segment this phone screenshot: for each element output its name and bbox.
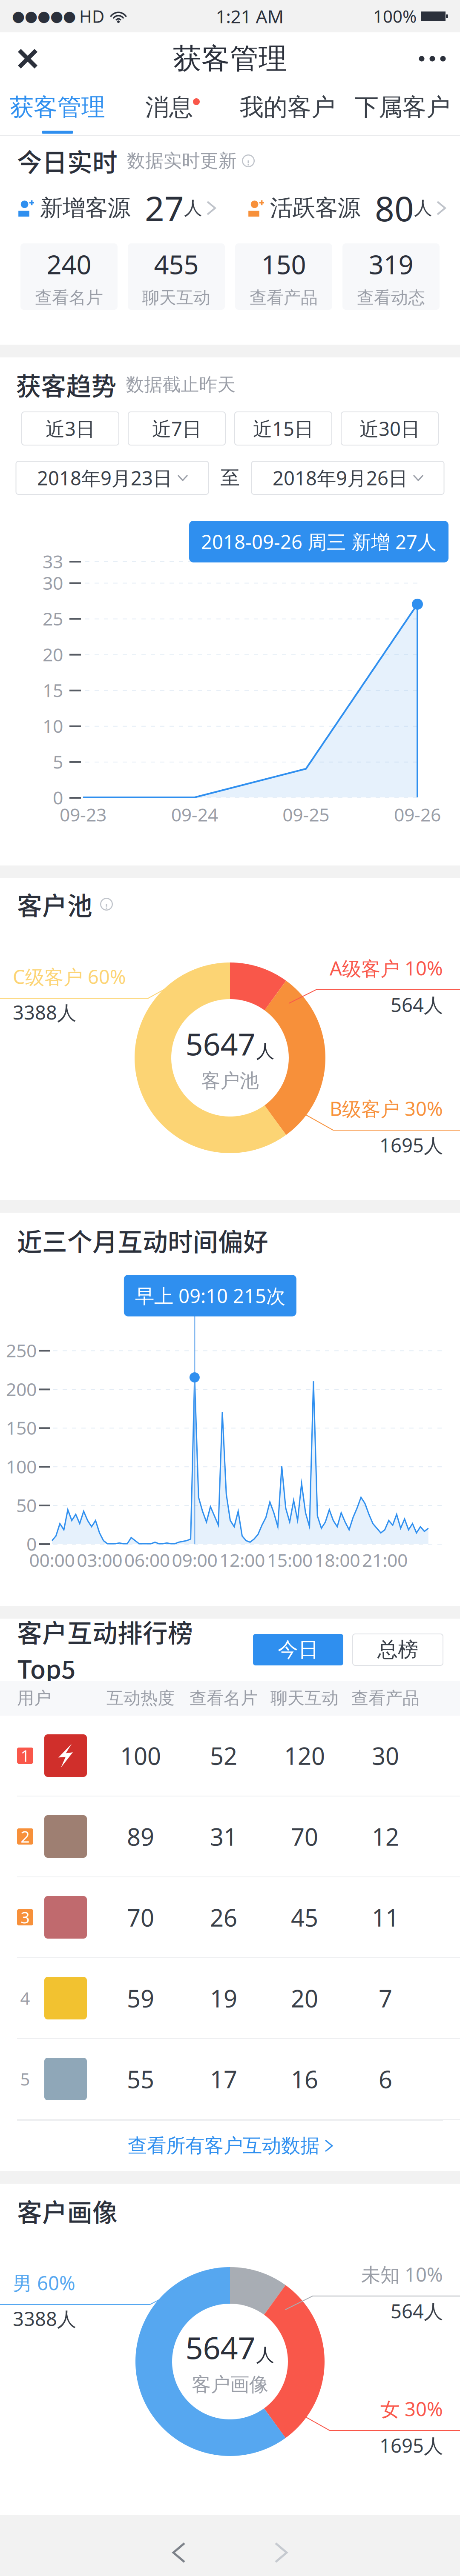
staticText: 今日实时 bbox=[17, 143, 118, 179]
staticText: 查看动态 bbox=[357, 287, 425, 308]
staticText: 564人 bbox=[391, 991, 443, 1018]
staticText: 240 bbox=[47, 246, 91, 282]
staticText: 下属客户 bbox=[355, 92, 450, 122]
staticText: 20 bbox=[43, 642, 63, 667]
staticText: 59 bbox=[127, 1982, 154, 2014]
staticText: A级客户 10% bbox=[330, 955, 443, 981]
button[interactable]: 今日 bbox=[253, 1634, 343, 1665]
staticText: 11 bbox=[372, 1901, 399, 1934]
staticText: 聊天互动 bbox=[270, 1687, 339, 1709]
staticText: 女 30% bbox=[380, 2396, 443, 2422]
staticText: 查看所有客户互动数据 bbox=[128, 2134, 319, 2158]
staticText: 30 bbox=[372, 1739, 399, 1772]
staticText: 获客管理 bbox=[10, 92, 105, 122]
staticText: 31 bbox=[210, 1820, 237, 1853]
staticText: 50 bbox=[16, 1493, 37, 1517]
button[interactable]: Close bbox=[0, 32, 55, 85]
staticText: 15:00 bbox=[267, 1548, 312, 1572]
staticText: 70 bbox=[291, 1820, 318, 1853]
staticText: 30 bbox=[43, 570, 63, 595]
staticText: 09-26 bbox=[394, 802, 441, 827]
staticText: 27 bbox=[145, 185, 184, 231]
staticText: 2018-09-26 周三 新增 27人 bbox=[201, 528, 437, 555]
button[interactable]: 近3日 bbox=[22, 412, 119, 445]
button[interactable]: 2018年9月23日 bbox=[16, 461, 208, 494]
button[interactable]: 240 bbox=[20, 243, 118, 310]
button[interactable]: 2018年9月26日 bbox=[252, 461, 444, 494]
button[interactable]: 下属客户 bbox=[345, 85, 460, 135]
staticText: 客户画像 bbox=[192, 2372, 268, 2397]
staticText: 100 bbox=[6, 1454, 37, 1479]
button[interactable]: More options bbox=[405, 32, 460, 85]
staticText: 03:00 bbox=[77, 1548, 122, 1572]
button[interactable]: 我的客户 bbox=[230, 85, 345, 135]
button[interactable]: 455 bbox=[128, 243, 225, 310]
staticText: 未知 10% bbox=[361, 2261, 443, 2287]
staticText: 20 bbox=[291, 1982, 318, 2014]
button[interactable]: 消息 bbox=[115, 85, 230, 135]
button[interactable]: 近15日 bbox=[235, 412, 332, 445]
button[interactable]: 查看所有客户互动数据 bbox=[0, 2121, 460, 2171]
staticText: 3 bbox=[21, 1907, 30, 1928]
button[interactable]: 150 bbox=[235, 243, 332, 310]
staticText: 120 bbox=[284, 1739, 325, 1772]
staticText: 近15日 bbox=[253, 415, 313, 442]
staticText: 人 bbox=[256, 2344, 275, 2366]
staticText: 7 bbox=[379, 1982, 392, 2014]
button[interactable]: 活跃客源 bbox=[230, 186, 460, 231]
staticText: 19 bbox=[210, 1982, 237, 2014]
staticText: 250 bbox=[6, 1338, 37, 1363]
button[interactable]: 总榜 bbox=[353, 1634, 443, 1665]
staticText: 55 bbox=[127, 2063, 154, 2095]
staticText: 5 bbox=[20, 2067, 30, 2091]
staticText: 人 bbox=[256, 1040, 275, 1063]
staticText: 0 bbox=[26, 1531, 37, 1556]
staticText: ●●●●● bbox=[12, 8, 76, 25]
button[interactable]: 近7日 bbox=[128, 412, 225, 445]
staticText: 早上 09:10 215次 bbox=[135, 1282, 285, 1309]
staticText: 09:00 bbox=[172, 1548, 217, 1572]
staticText: 近7日 bbox=[152, 415, 201, 442]
staticText: 80 bbox=[375, 185, 414, 231]
staticText: 人 bbox=[414, 197, 432, 220]
staticText: 319 bbox=[369, 246, 413, 282]
staticText: 70 bbox=[127, 1901, 154, 1934]
staticText: 150 bbox=[261, 246, 306, 282]
button[interactable]: Back bbox=[147, 2529, 211, 2576]
staticText: 至 bbox=[220, 466, 240, 490]
staticText: B级客户 30% bbox=[330, 1095, 443, 1122]
button[interactable]: 319 bbox=[342, 243, 440, 310]
staticText: 25 bbox=[43, 606, 63, 631]
staticText: 近30日 bbox=[359, 415, 420, 442]
staticText: 客户画像 bbox=[17, 2193, 118, 2229]
staticText: 互动热度 bbox=[106, 1687, 175, 1709]
staticText: 1:21 AM bbox=[216, 4, 284, 29]
staticText: 查看名片 bbox=[35, 287, 103, 308]
staticText: 查看产品 bbox=[250, 287, 318, 308]
button[interactable]: 新增客源 bbox=[0, 186, 230, 231]
staticText: 数据实时更新 bbox=[127, 149, 237, 172]
staticText: 5647 bbox=[185, 1023, 255, 1064]
staticText: 09-24 bbox=[171, 802, 218, 827]
staticText: 男 60% bbox=[13, 2270, 75, 2296]
staticText: 2018年9月23日 bbox=[37, 465, 172, 491]
staticText: 1 bbox=[21, 1745, 30, 1766]
staticText: 获客趋势 bbox=[16, 367, 116, 403]
staticText: 100 bbox=[120, 1739, 161, 1772]
staticText: 150 bbox=[6, 1415, 37, 1440]
staticText: 06:00 bbox=[124, 1548, 170, 1572]
staticText: 近三个月互动时间偏好 bbox=[17, 1222, 268, 1258]
staticText: 查看产品 bbox=[351, 1687, 420, 1709]
staticText: HD bbox=[79, 5, 104, 28]
staticText: 00:00 bbox=[29, 1548, 75, 1572]
staticText: 0 bbox=[53, 785, 63, 810]
staticText: 获客管理 bbox=[173, 41, 287, 77]
button[interactable]: 获客管理 bbox=[0, 85, 115, 135]
staticText: 用户 bbox=[17, 1687, 51, 1709]
button[interactable]: Forward bbox=[249, 2529, 313, 2576]
button[interactable]: 近30日 bbox=[341, 412, 438, 445]
staticText: 26 bbox=[210, 1901, 237, 1934]
staticText: 聊天互动 bbox=[142, 287, 210, 308]
staticText: 45 bbox=[291, 1901, 318, 1934]
staticText: 6 bbox=[379, 2063, 392, 2095]
